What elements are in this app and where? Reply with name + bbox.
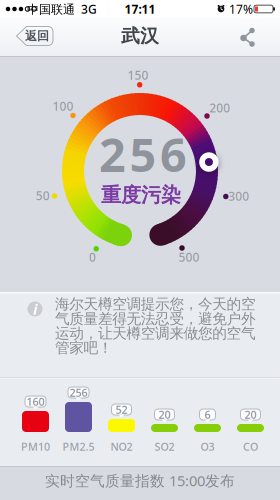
staticText: 256: [99, 123, 187, 185]
staticText: 300: [228, 188, 249, 204]
staticText: PM2.5: [62, 439, 94, 454]
staticText: 0: [89, 249, 96, 265]
staticText: 武汉: [121, 24, 159, 47]
staticText: 500: [178, 249, 199, 265]
staticText: 200: [209, 100, 230, 116]
staticText: 气质量差得无法忍受，避免户外: [55, 310, 256, 328]
staticText: i: [33, 299, 37, 319]
staticText: 160: [26, 394, 44, 409]
staticText: PM10: [21, 439, 50, 454]
staticText: 实时空气质量指数 15:00发布: [45, 471, 235, 490]
staticText: 返回: [25, 29, 49, 43]
staticText: SO2: [154, 439, 174, 454]
staticText: 中国联通 3G: [27, 1, 97, 17]
staticText: 150: [127, 67, 148, 83]
staticText: 50: [36, 188, 50, 204]
staticText: 20: [244, 407, 256, 422]
staticText: 6: [204, 407, 210, 422]
staticText: 100: [52, 98, 73, 114]
button[interactable]: 返回: [0, 18, 60, 54]
staticText: 52: [115, 402, 127, 417]
staticText: 256: [69, 385, 87, 400]
staticText: 17%: [229, 1, 253, 17]
staticText: 20: [158, 407, 170, 422]
staticText: CO: [243, 439, 258, 454]
staticText: 重度污染: [101, 183, 181, 207]
staticText: 管家吧！: [55, 339, 113, 357]
staticText: 海尔天樽空调提示您，今天的空: [55, 295, 256, 313]
button[interactable]: 分享: [238, 26, 257, 48]
staticText: O3: [200, 439, 214, 454]
staticText: 17:11: [124, 1, 155, 17]
staticText: NO2: [110, 439, 132, 454]
staticText: 运动，让天樽空调来做您的空气: [55, 324, 256, 342]
